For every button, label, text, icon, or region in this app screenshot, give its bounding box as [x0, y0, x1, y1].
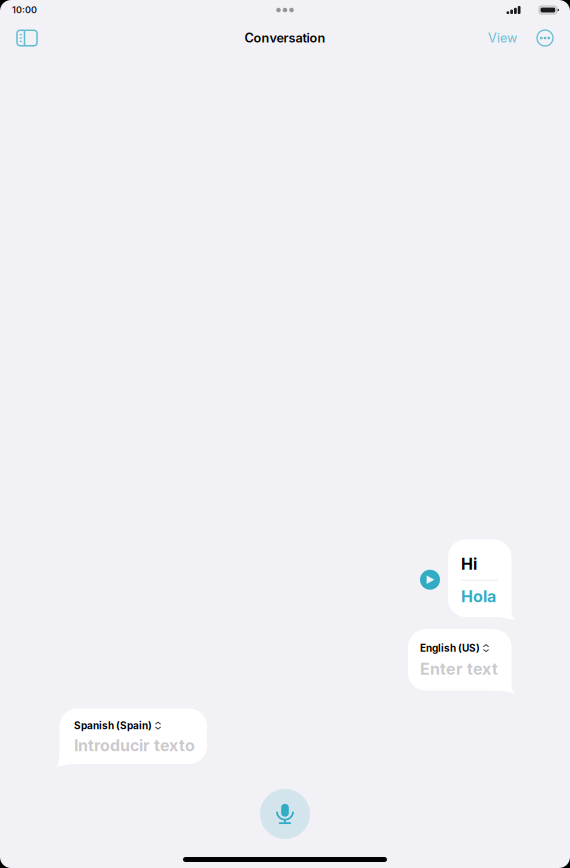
- staticText: Conversation: [244, 30, 325, 46]
- staticText: Enter text: [420, 659, 498, 679]
- staticText: 10:00: [12, 4, 37, 15]
- staticText: Introducir texto: [74, 736, 195, 755]
- staticText: Hi: [461, 554, 477, 574]
- staticText: Spanish (Spain): [74, 719, 152, 732]
- staticText: View: [488, 30, 517, 46]
- button[interactable]: Record: [260, 789, 310, 839]
- staticText: Hola: [461, 587, 496, 606]
- button[interactable]: More: [527, 20, 563, 56]
- staticText: English (US): [420, 642, 480, 654]
- button[interactable]: Show Sidebar: [5, 20, 49, 56]
- button[interactable]: Play translation: [420, 570, 440, 590]
- button[interactable]: View: [478, 20, 527, 56]
